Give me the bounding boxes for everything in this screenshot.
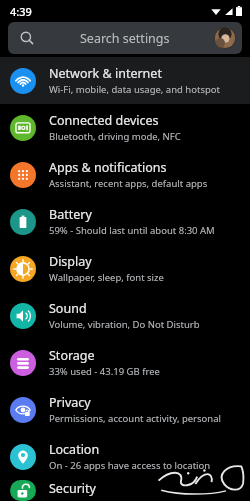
button[interactable]: Display — [0, 245, 250, 292]
button[interactable]: Privacy — [0, 386, 250, 433]
staticText: Permissions, account activity, personal … — [49, 412, 240, 425]
staticText: Location — [49, 441, 100, 458]
staticText: Storage — [49, 347, 95, 364]
staticText: Connected devices — [49, 112, 159, 129]
button[interactable]: Location — [0, 433, 250, 480]
staticText: 33% used - 43.19 GB free — [49, 365, 160, 378]
button[interactable]: Security — [0, 480, 250, 501]
staticText: Assistant, recent apps, default apps — [49, 177, 208, 190]
staticText: Network & internet — [49, 65, 162, 82]
button[interactable]: Account — [214, 27, 236, 49]
button[interactable]: Storage — [0, 339, 250, 386]
staticText: On - 26 apps have access to location — [49, 459, 211, 472]
staticText: Bluetooth, driving mode, NFC — [49, 130, 181, 143]
staticText: Wallpaper, sleep, font size — [49, 271, 164, 284]
staticText: Battery — [49, 206, 92, 223]
staticText: Apps & notifications — [49, 159, 167, 176]
staticText: Privacy — [49, 394, 91, 411]
other: Search — [20, 31, 34, 45]
staticText: 4:39 — [10, 4, 32, 19]
button[interactable]: Search — [8, 22, 242, 54]
button[interactable]: Connected devices — [0, 104, 250, 151]
staticText: Wi-Fi, mobile, data usage, and hotspot — [49, 83, 220, 96]
button[interactable]: Network & internet — [0, 57, 250, 104]
staticText: Sound — [49, 300, 87, 317]
staticText: Search settings — [80, 30, 170, 47]
button[interactable]: Battery — [0, 198, 250, 245]
staticText: Display — [49, 253, 92, 270]
button[interactable]: Sound — [0, 292, 250, 339]
staticText: Security — [49, 480, 96, 497]
staticText: Volume, vibration, Do Not Disturb — [49, 318, 200, 331]
staticText: 59% - Should last until about 8:30 AM — [49, 224, 215, 237]
button[interactable]: Apps & notifications — [0, 151, 250, 198]
